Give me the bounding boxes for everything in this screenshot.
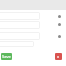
staticText: Save <box>2 54 11 59</box>
button[interactable]: Options <box>58 35 61 38</box>
button[interactable] <box>0 12 40 20</box>
button[interactable]: Save <box>1 53 12 60</box>
button[interactable]: Options <box>58 15 61 18</box>
staticText: x <box>57 54 60 59</box>
button[interactable]: Delete <box>55 53 62 60</box>
button[interactable]: Options <box>58 23 61 26</box>
button[interactable] <box>0 32 40 40</box>
button[interactable] <box>0 21 40 29</box>
button[interactable] <box>0 41 34 47</box>
